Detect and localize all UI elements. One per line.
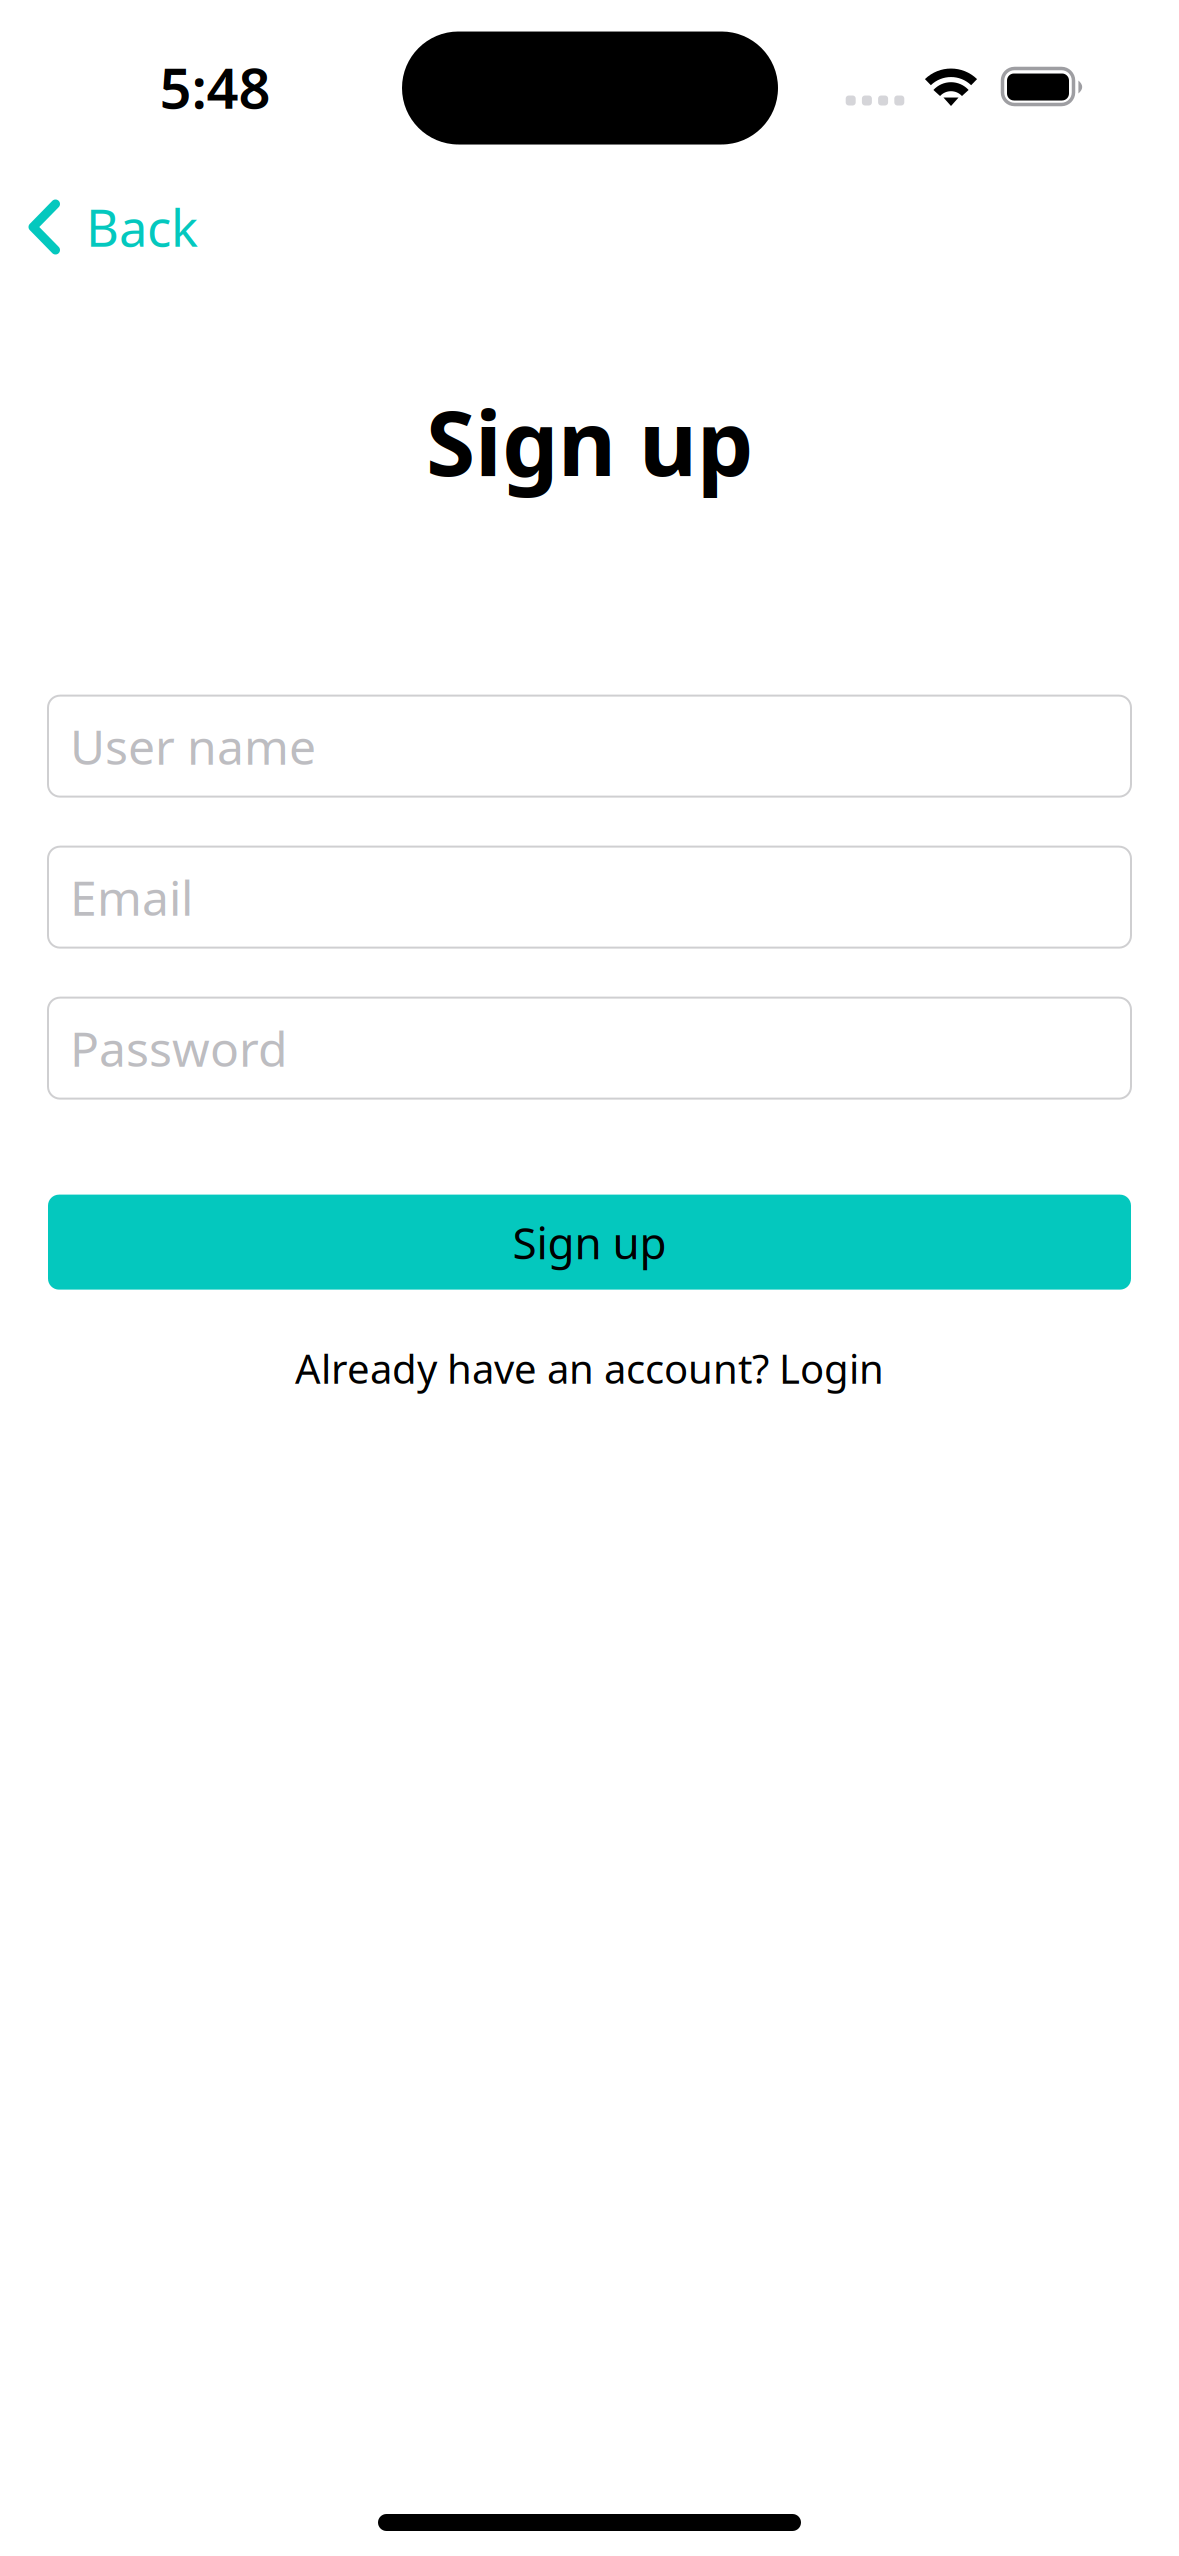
button[interactable]: User name <box>48 696 1131 797</box>
staticText: User name <box>70 714 316 778</box>
staticText: Sign up <box>426 382 753 501</box>
button[interactable]: Back <box>0 179 222 275</box>
staticText: Password <box>70 1016 288 1080</box>
staticText: Sign up <box>512 1213 666 1271</box>
staticText: Email <box>70 865 193 929</box>
button[interactable]: Already have an account? Login <box>0 1332 1179 1405</box>
staticText: Already have an account? Login <box>295 1342 884 1395</box>
button[interactable]: Sign up <box>48 1195 1131 1290</box>
staticText: Back <box>86 193 198 261</box>
staticText: 5:48 <box>159 50 270 124</box>
button[interactable]: Password <box>48 998 1131 1099</box>
button[interactable]: Email <box>48 847 1131 948</box>
